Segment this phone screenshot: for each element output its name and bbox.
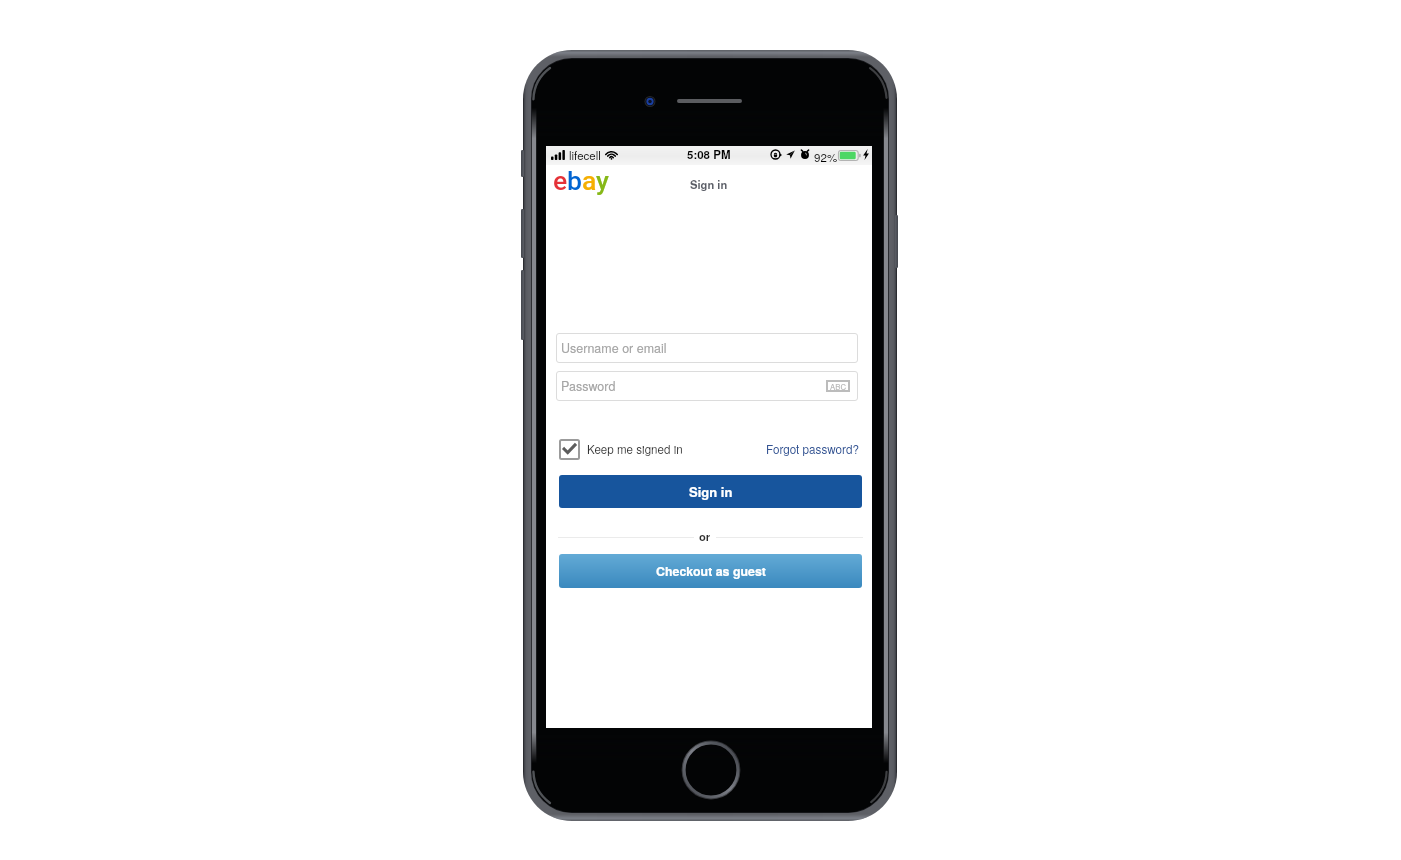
other: Rotation lock [770,149,781,160]
staticText: y [596,165,609,196]
other: Alarm [800,149,810,159]
staticText: Sign in [689,482,733,501]
button[interactable]: Forgot password? [766,438,860,460]
staticText: Checkout as guest [656,562,766,580]
staticText: a [582,165,596,196]
staticText: 92% [814,149,838,166]
staticText: e [553,165,567,196]
button[interactable]: Checkout as guest [559,554,862,588]
button[interactable]: Password [556,371,858,401]
other: eBay [553,165,609,196]
staticText: Password [561,377,616,395]
staticText: Forgot password? [766,441,860,458]
other: Battery 92% [838,150,861,161]
staticText: ABC [830,381,847,392]
other: Home [681,740,741,800]
staticText: or [699,528,711,544]
staticText: lifecell [569,147,601,163]
button[interactable]: Sign in [559,475,862,508]
staticText: Username or email [561,339,667,357]
staticText: Sign in [690,176,728,192]
button[interactable]: Keep me signed in [559,438,683,460]
other: Location [786,150,795,159]
staticText: Keep me signed in [587,441,683,458]
staticText: 5:08 PM [687,146,731,162]
button[interactable]: Username or email [556,333,858,363]
staticText: b [567,165,582,196]
